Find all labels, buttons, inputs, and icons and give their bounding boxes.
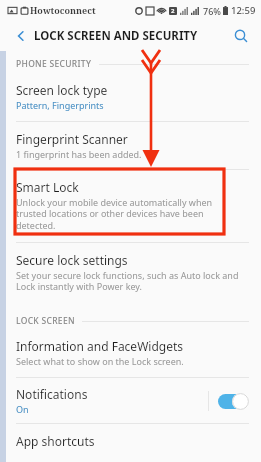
staticText: 12:59 (231, 4, 256, 17)
staticText: 2 (171, 7, 175, 15)
staticText: Select what to show on the Lock screen. (16, 355, 184, 367)
button[interactable]: Notifications (0, 378, 261, 423)
staticText: Fingerprint Scanner (16, 131, 128, 147)
button[interactable]: Smart Lock (0, 170, 261, 242)
button[interactable]: Back (10, 25, 32, 47)
button[interactable]: App shortcuts (0, 424, 261, 462)
button[interactable]: Information and FaceWidgets (0, 329, 261, 377)
staticText: Secure lock settings (16, 252, 128, 268)
button[interactable]: Screen lock type (0, 72, 261, 121)
staticText: PHONE SECURITY (16, 58, 92, 70)
staticText: Screen lock type (16, 82, 108, 98)
staticText: 76% (203, 5, 221, 17)
staticText: Pattern, Fingerprints (16, 99, 104, 111)
staticText: Information and FaceWidgets (16, 338, 184, 354)
staticText: Smart Lock (16, 179, 79, 195)
staticText: App shortcuts (16, 433, 95, 449)
staticText: Unlock your mobile device automatically … (16, 196, 239, 232)
staticText: 1 fingerprint has been added. (16, 148, 142, 160)
button[interactable]: Fingerprint Scanner (0, 122, 261, 169)
button[interactable]: Notifications toggle (218, 392, 251, 410)
staticText: LOCK SCREEN AND SECURITY (34, 28, 198, 44)
staticText: Set your secure lock functions, such as … (16, 269, 239, 293)
staticText: On (16, 403, 29, 415)
staticText: Howtoconnect (30, 4, 96, 16)
button[interactable]: Search (229, 24, 253, 48)
staticText: LOCK SCREEN (16, 315, 75, 327)
button[interactable]: Secure lock settings (0, 243, 261, 303)
staticText: Notifications (16, 386, 88, 402)
